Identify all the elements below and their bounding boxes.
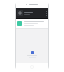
other: Action: [31, 51, 34, 54]
button[interactable]: App icon: [16, 19, 48, 28]
button[interactable]: Action: [27, 51, 37, 58]
button[interactable]: Logo: [17, 10, 23, 16]
button[interactable]: Logo: [16, 8, 48, 18]
button[interactable]: Home: [30, 65, 34, 69]
button[interactable]: Menu: [46, 11, 47, 16]
other: App icon: [17, 21, 22, 26]
